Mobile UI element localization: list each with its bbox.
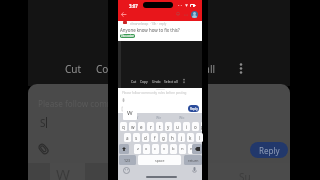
staticText: Reply [190, 107, 198, 111]
staticText: n [181, 146, 184, 152]
button[interactable]: Dictate [192, 167, 197, 174]
staticText: return [188, 158, 199, 163]
button[interactable]: j [178, 133, 185, 142]
staticText: r/marvelsnap · 13h · reply [130, 22, 167, 26]
staticText: s [135, 135, 138, 141]
button[interactable]: Back [121, 12, 126, 17]
button[interactable]: h [169, 133, 176, 142]
button[interactable]: Cut [65, 62, 82, 76]
staticText: S [40, 116, 46, 130]
button[interactable]: b [170, 144, 177, 154]
button[interactable]: Select all [164, 79, 178, 83]
staticText: w [131, 124, 135, 130]
button[interactable]: Wo [179, 115, 185, 120]
staticText: k [189, 135, 192, 141]
button[interactable]: f [151, 133, 158, 142]
button[interactable]: Attach [38, 143, 49, 155]
staticText: i [186, 124, 188, 130]
staticText: p [201, 124, 202, 130]
staticText: 3:07 [129, 3, 138, 9]
button[interactable]: Copy [140, 79, 148, 83]
button[interactable]: Undo [152, 79, 161, 83]
button[interactable]: We [156, 115, 162, 120]
staticText: z [137, 146, 139, 152]
staticText: space [155, 158, 165, 163]
staticText: y [167, 124, 170, 130]
button[interactable]: g [160, 133, 167, 142]
button[interactable]: n [179, 144, 186, 154]
staticText: Please follow community rules before pos… [122, 91, 187, 95]
staticText: W [127, 109, 133, 117]
button[interactable]: Select all [174, 62, 216, 76]
staticText: e [140, 124, 143, 130]
button[interactable]: Emoji [122, 98, 125, 103]
staticText: W [56, 164, 70, 180]
button[interactable]: d [142, 133, 149, 142]
staticText: m [190, 146, 194, 152]
staticText: Reply [259, 145, 280, 156]
button[interactable]: Notifications [176, 12, 180, 16]
button[interactable]: q [120, 122, 127, 131]
staticText: r [150, 124, 152, 130]
staticText: h [171, 135, 174, 141]
button[interactable]: p [201, 122, 202, 131]
button[interactable]: c [152, 144, 159, 154]
button[interactable]: e [138, 122, 145, 131]
staticText: u [176, 124, 179, 130]
staticText: b [172, 146, 175, 152]
staticText: t [159, 124, 161, 130]
button[interactable]: z [134, 144, 141, 154]
button[interactable]: t [156, 122, 163, 131]
button[interactable]: k [187, 133, 194, 142]
button[interactable]: l [196, 133, 203, 142]
button[interactable]: w [129, 122, 136, 131]
button[interactable]: 123 [119, 155, 136, 165]
button[interactable]: i [183, 122, 190, 131]
button[interactable]: s [133, 133, 140, 142]
button[interactable]: Emoji [123, 167, 130, 174]
button[interactable]: return [184, 155, 202, 165]
staticText: Please follow comm [38, 98, 115, 109]
staticText: a [126, 135, 129, 141]
staticText: q [122, 124, 125, 130]
button[interactable]: Shift [119, 144, 129, 154]
staticText: d [144, 135, 147, 141]
staticText: Discussion [121, 34, 134, 38]
staticText: v [163, 146, 166, 152]
button[interactable] [191, 11, 198, 18]
staticText: c [154, 146, 157, 152]
staticText: Su [239, 170, 251, 180]
staticText: o [194, 124, 197, 130]
staticText: x [145, 146, 148, 152]
staticText: 123 [124, 158, 131, 163]
button[interactable]: v [161, 144, 168, 154]
button[interactable]: Reply [250, 142, 288, 158]
button[interactable]: Backspace [192, 144, 202, 154]
button[interactable]: Copy [96, 62, 120, 76]
staticText: g [162, 135, 165, 141]
button[interactable]: More options [239, 63, 243, 74]
button[interactable]: Discussion [120, 34, 135, 38]
button[interactable]: r [147, 122, 154, 131]
button[interactable]: y [165, 122, 172, 131]
button[interactable]: W [135, 115, 139, 120]
button[interactable]: u [174, 122, 181, 131]
staticText: l [199, 135, 201, 141]
button[interactable]: More options [183, 79, 185, 83]
button[interactable]: o [192, 122, 199, 131]
button[interactable]: x [143, 144, 150, 154]
button[interactable]: m [188, 144, 195, 154]
button[interactable]: GIF [122, 107, 126, 111]
staticText: Anyone know how to fix this? [120, 27, 180, 33]
button[interactable]: space [138, 155, 181, 165]
button[interactable]: Reply [188, 105, 199, 112]
button[interactable]: Cut [131, 79, 137, 83]
button[interactable]: a [124, 133, 131, 142]
staticText: j [181, 135, 183, 141]
staticText: f [154, 135, 156, 141]
